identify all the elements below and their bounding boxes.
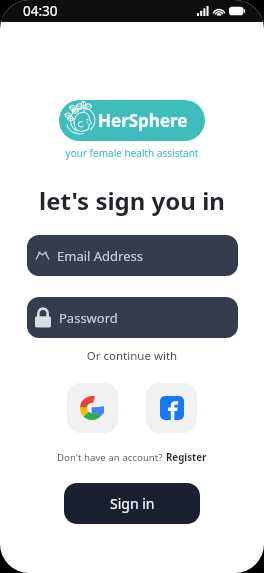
staticText: Register [166,451,207,464]
staticText: Email Address [57,247,143,265]
button[interactable]: Sign in [64,483,200,524]
staticText: let's sign you in [0,184,264,217]
staticText: Don't have an account? [57,451,166,464]
staticText: your female health assistant [0,146,264,160]
button[interactable]: Register [166,451,207,464]
staticText: 04:30 [23,2,58,20]
staticText: Password [59,309,118,327]
button[interactable]: Email Address [27,235,238,276]
staticText: Or continue with [0,348,264,364]
button[interactable]: Sign in with Google [67,383,118,433]
button[interactable]: Password [27,297,238,338]
button[interactable]: Sign in with Facebook [146,383,197,433]
staticText: HerSphere [98,109,188,132]
staticText: Sign in [110,494,155,513]
